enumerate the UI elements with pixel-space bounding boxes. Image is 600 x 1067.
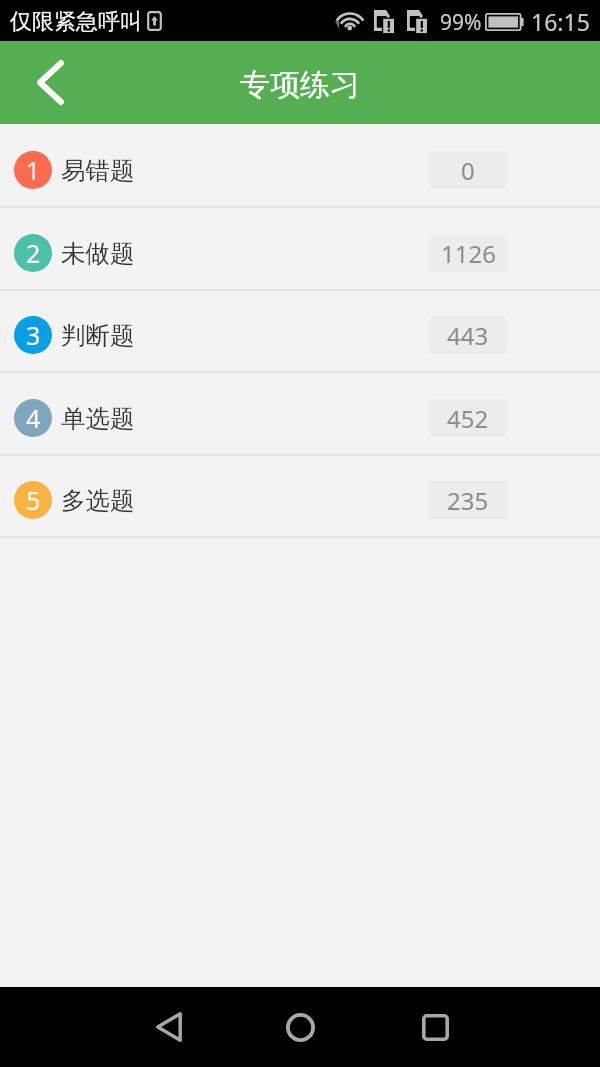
- staticText: 99%: [440, 8, 482, 37]
- staticText: 3: [26, 318, 41, 352]
- staticText: 单选题: [61, 403, 135, 434]
- staticText: 16:15: [531, 6, 590, 37]
- staticText: 235: [447, 484, 489, 517]
- staticText: 易错题: [61, 155, 135, 186]
- staticText: 4: [26, 401, 41, 435]
- button[interactable]: Home: [272, 999, 328, 1055]
- staticText: 2: [26, 236, 41, 270]
- button[interactable]: Back: [141, 999, 197, 1055]
- staticText: 仅限紧急呼叫: [10, 8, 142, 36]
- staticText: 0: [461, 154, 475, 187]
- button[interactable]: 2: [0, 208, 600, 291]
- staticText: 1126: [441, 237, 496, 270]
- button[interactable]: Back: [0, 41, 80, 124]
- staticText: 专项练习: [240, 66, 360, 104]
- staticText: 1: [26, 153, 41, 187]
- staticText: 判断题: [61, 320, 135, 351]
- button[interactable]: 5: [0, 455, 600, 538]
- button[interactable]: Recent apps: [407, 999, 463, 1055]
- button[interactable]: 4: [0, 373, 600, 456]
- staticText: 452: [447, 402, 489, 435]
- staticText: 443: [447, 319, 489, 352]
- button[interactable]: 3: [0, 290, 600, 373]
- staticText: 多选题: [61, 485, 135, 516]
- staticText: 未做题: [61, 238, 135, 269]
- staticText: 5: [26, 483, 41, 517]
- button[interactable]: 1: [0, 125, 600, 208]
